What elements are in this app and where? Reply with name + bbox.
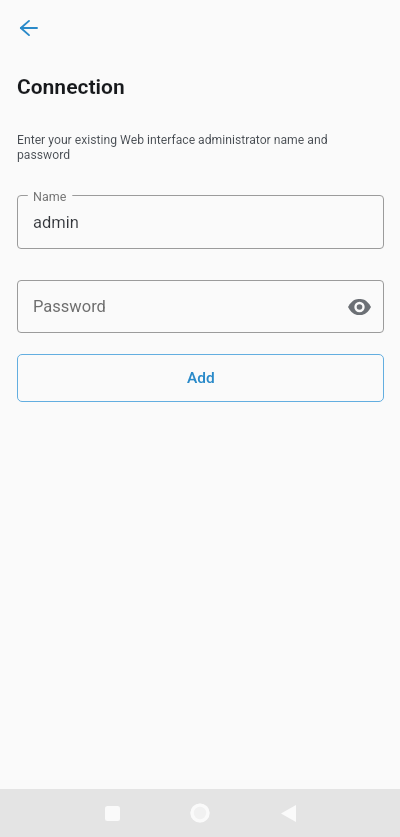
- staticText: Connection: [17, 75, 125, 100]
- button[interactable]: Add: [17, 354, 384, 402]
- button[interactable]: Name: [17, 195, 384, 249]
- staticText: Name: [33, 189, 67, 204]
- button[interactable]: Recents: [88, 789, 136, 837]
- staticText: Add: [187, 369, 215, 387]
- staticText: admin: [33, 213, 79, 232]
- button[interactable]: Home: [176, 789, 224, 837]
- button[interactable]: Password: [17, 280, 384, 333]
- button[interactable]: Back: [264, 789, 312, 837]
- button[interactable]: Back: [11, 11, 45, 45]
- staticText: Enter your existing Web interface admini…: [17, 133, 339, 162]
- button[interactable]: Show password: [342, 290, 376, 324]
- staticText: Password: [33, 297, 106, 316]
